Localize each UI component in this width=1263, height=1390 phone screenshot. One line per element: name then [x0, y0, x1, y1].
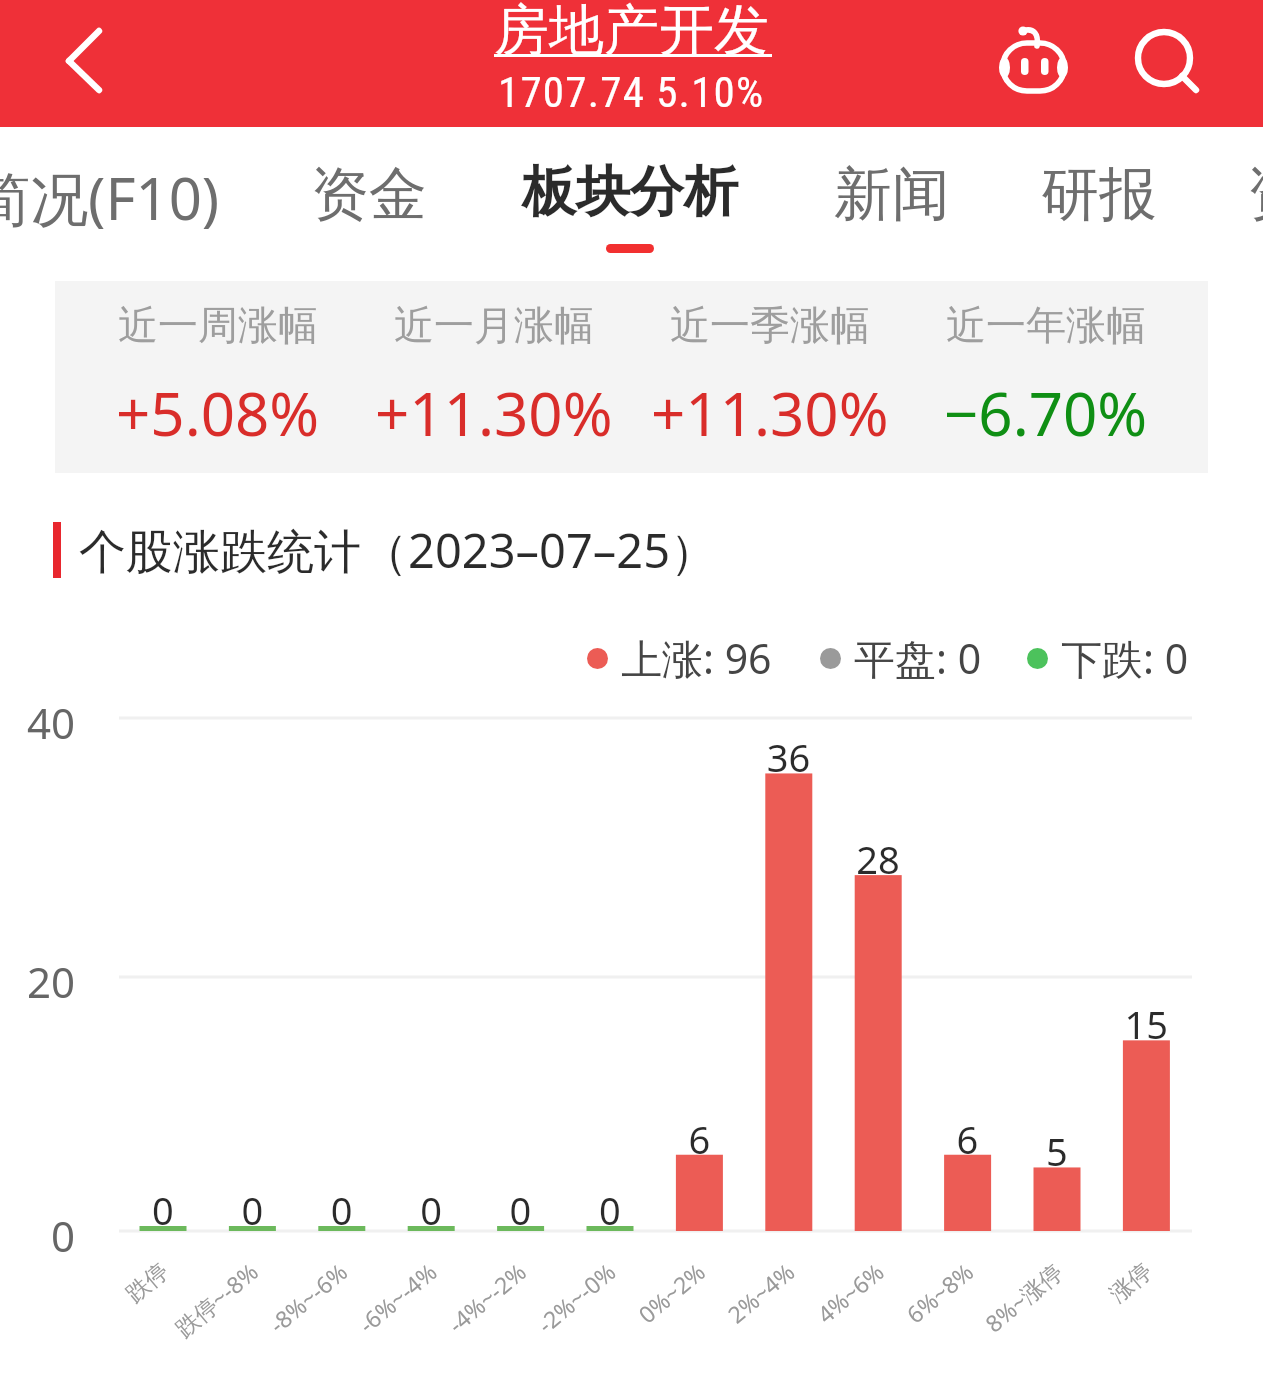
button[interactable]: 简况(F10) [0, 127, 256, 255]
staticText: 研报 [1041, 158, 1157, 231]
staticText: +5.08% [116, 372, 320, 454]
button[interactable]: 板块分析 [500, 127, 760, 255]
staticText: 资金 [311, 158, 427, 231]
staticText: 平盘: 0 [854, 630, 982, 686]
staticText: 个股涨跌统计（2023–07–25） [79, 518, 718, 582]
button[interactable]: 资讯 [1200, 127, 1263, 255]
button[interactable]: 新闻 [782, 127, 1002, 255]
staticText: +11.30% [651, 372, 889, 454]
button[interactable]: 资金 [269, 127, 469, 255]
staticText: 房地产开发 [494, 0, 769, 65]
staticText: 近一季涨幅 [670, 300, 870, 350]
staticText: +11.30% [375, 372, 613, 454]
staticText: 近一周涨幅 [118, 300, 318, 350]
staticText: −6.70% [944, 372, 1148, 454]
staticText: 下跌: 0 [1061, 630, 1189, 686]
staticText: 近一月涨幅 [394, 300, 594, 350]
staticText: 上涨: 96 [621, 630, 772, 686]
button[interactable]: Search [1118, 13, 1210, 105]
staticText: 简况(F10) [0, 158, 220, 237]
staticText: 1707.74 5.10% [498, 67, 765, 117]
button[interactable]: AI assistant [988, 13, 1080, 105]
button[interactable]: Back [44, 16, 124, 106]
staticText: 近一年涨幅 [946, 300, 1146, 350]
button[interactable]: 研报 [994, 127, 1204, 255]
staticText: 板块分析 [522, 158, 738, 226]
staticText: 资讯 [1247, 158, 1263, 231]
staticText: 新闻 [834, 158, 950, 231]
